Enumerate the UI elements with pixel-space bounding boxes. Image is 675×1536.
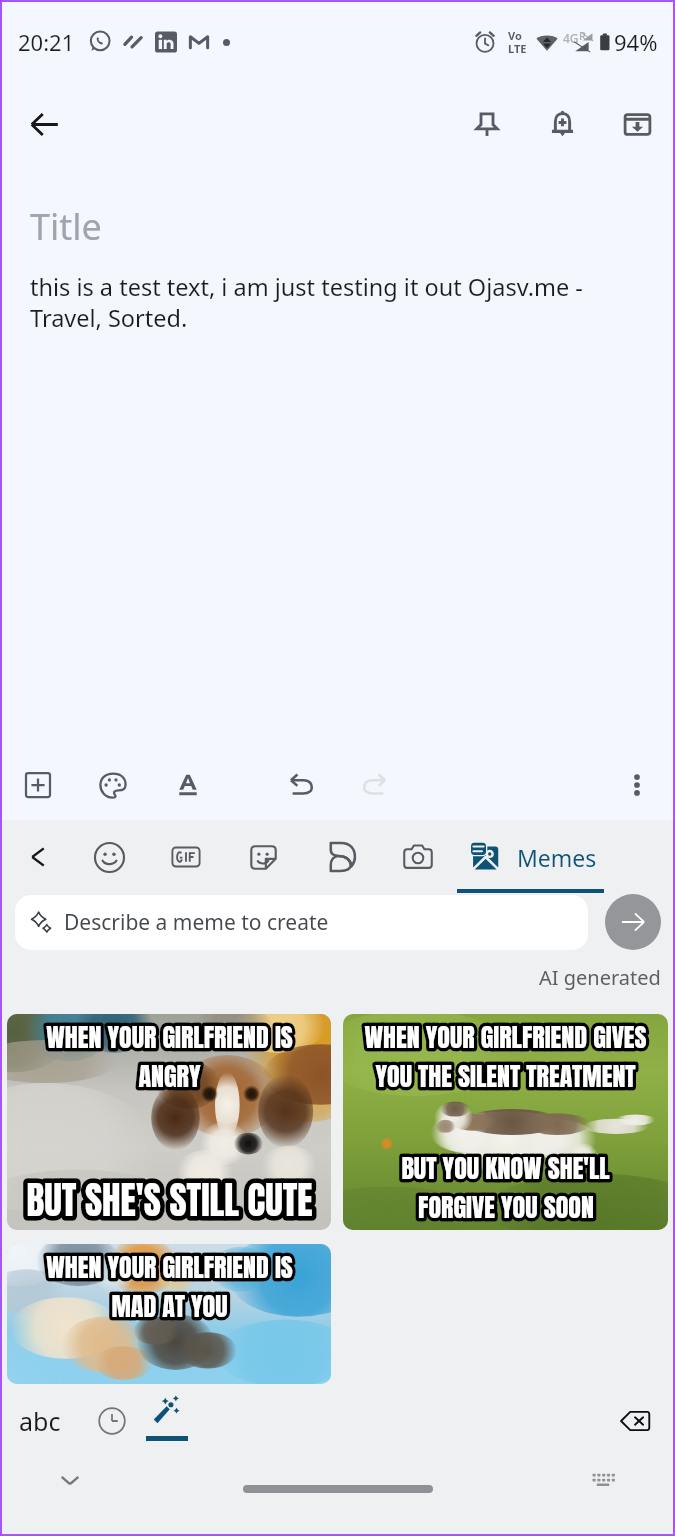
button[interactable]: Reminder <box>534 96 590 152</box>
button[interactable]: Add <box>12 759 64 811</box>
staticText: MAD AT YOU <box>111 1286 228 1325</box>
button[interactable]: Magic <box>143 1390 191 1452</box>
staticText: Title <box>30 202 102 251</box>
button[interactable]: GIF <box>163 834 209 880</box>
button[interactable]: Emoji <box>86 834 132 880</box>
button[interactable]: Pin <box>459 96 515 152</box>
button[interactable]: Hide keyboard <box>48 1458 92 1502</box>
button[interactable]: More options <box>611 759 663 811</box>
staticText: FORGIVE YOU SOON <box>418 1187 594 1226</box>
staticText: ANGRY <box>138 1056 201 1095</box>
staticText: LTE <box>508 41 527 56</box>
button[interactable]: WHEN YOUR GIRLFRIEND IS <box>7 1244 331 1384</box>
staticText: Describe a meme to create <box>64 908 329 937</box>
staticText: WHEN YOUR GIRLFRIEND IS <box>46 1017 293 1056</box>
button[interactable]: Emoji kitchen <box>319 834 365 880</box>
staticText: BUT SHE'S STILL CUTE <box>26 1172 313 1228</box>
staticText: MAD AT YOU <box>111 1286 228 1325</box>
staticText: BUT YOU KNOW SHE'LL <box>401 1148 610 1187</box>
button[interactable]: Undo <box>275 759 327 811</box>
staticText: WHEN YOUR GIRLFRIEND IS <box>46 1017 293 1056</box>
button[interactable]: Back <box>16 96 72 152</box>
button[interactable]: WHEN YOUR GIRLFRIEND IS <box>7 1014 331 1230</box>
button[interactable]: Describe a meme to create <box>15 895 588 950</box>
staticText: this is a test text, i am just testing i… <box>30 271 615 334</box>
staticText: FORGIVE YOU SOON <box>418 1187 594 1226</box>
staticText: Memes <box>517 842 597 873</box>
button[interactable]: Format text <box>162 759 214 811</box>
button[interactable]: Redo <box>349 759 401 811</box>
staticText: WHEN YOUR GIRLFRIEND GIVES <box>364 1017 647 1056</box>
staticText: 20:21 <box>18 27 75 57</box>
staticText: 94% <box>614 27 658 57</box>
button[interactable]: Back <box>15 834 61 880</box>
button[interactable]: Generate meme <box>605 894 661 950</box>
staticText: ANGRY <box>138 1056 201 1095</box>
button[interactable]: Stickers <box>241 834 287 880</box>
button[interactable]: abc <box>8 1397 72 1445</box>
button[interactable]: Archive <box>609 96 665 152</box>
button[interactable]: Recent <box>88 1397 136 1445</box>
button[interactable]: WHEN YOUR GIRLFRIEND GIVES <box>343 1014 668 1230</box>
staticText: R <box>579 28 586 43</box>
staticText: AI generated <box>539 964 661 991</box>
button[interactable]: Camera <box>395 834 441 880</box>
staticText: YOU THE SILENT TREATMENT <box>375 1056 636 1095</box>
staticText: 4G <box>563 30 579 46</box>
staticText: abc <box>19 1404 61 1438</box>
staticText: BUT SHE'S STILL CUTE <box>26 1172 313 1228</box>
staticText: WHEN YOUR GIRLFRIEND IS <box>46 1247 293 1286</box>
button[interactable]: Switch keyboard <box>581 1458 625 1502</box>
staticText: WHEN YOUR GIRLFRIEND GIVES <box>364 1017 647 1056</box>
staticText: YOU THE SILENT TREATMENT <box>375 1056 636 1095</box>
button[interactable]: Palette <box>87 759 139 811</box>
staticText: BUT YOU KNOW SHE'LL <box>401 1148 610 1187</box>
button[interactable]: Memes <box>456 820 606 894</box>
button[interactable]: Backspace <box>609 1395 661 1447</box>
staticText: WHEN YOUR GIRLFRIEND IS <box>46 1247 293 1286</box>
staticText: Vo <box>508 28 522 43</box>
